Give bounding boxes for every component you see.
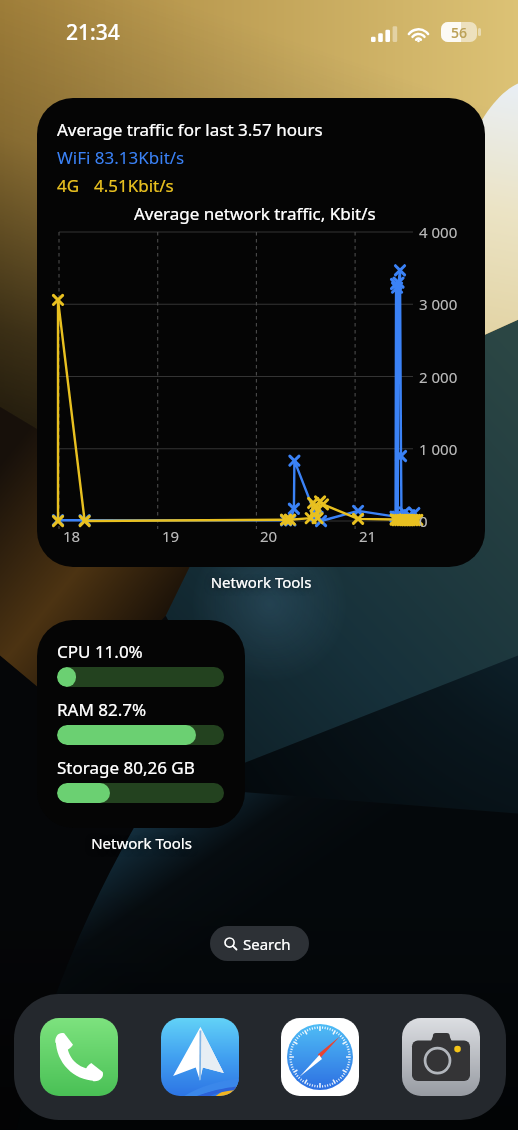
button[interactable]: CPU 11.0% bbox=[37, 620, 245, 828]
staticText: 21:34 bbox=[66, 18, 120, 47]
staticText: 1 000 bbox=[419, 439, 458, 459]
staticText: 2 000 bbox=[419, 367, 458, 387]
staticText: Network Tools bbox=[37, 833, 246, 853]
staticText: 4.51Kbit/s bbox=[94, 174, 174, 197]
staticText: Network Tools bbox=[37, 572, 485, 592]
staticText: 0 bbox=[419, 511, 428, 531]
staticText: Search bbox=[243, 934, 291, 954]
staticText: Storage 80,26 GB bbox=[57, 756, 195, 779]
staticText: 4G bbox=[57, 174, 80, 197]
button[interactable]: Spark Mail bbox=[161, 1018, 239, 1096]
staticText: 18 bbox=[63, 526, 81, 546]
button[interactable]: Search bbox=[210, 926, 309, 961]
staticText: 3 000 bbox=[419, 294, 458, 314]
button[interactable]: Safari bbox=[281, 1018, 359, 1096]
staticText: WiFi 83.13Kbit/s bbox=[57, 146, 185, 169]
staticText: 21 bbox=[359, 526, 377, 546]
button[interactable]: Average traffic for last 3.57 hours bbox=[37, 98, 485, 567]
staticText: 19 bbox=[162, 526, 180, 546]
staticText: 56 bbox=[451, 23, 468, 42]
staticText: 4 000 bbox=[419, 222, 458, 242]
button[interactable]: Phone bbox=[40, 1018, 118, 1096]
staticText: RAM 82.7% bbox=[57, 698, 147, 721]
staticText: Average network traffic, Kbit/s bbox=[134, 202, 376, 225]
button[interactable]: Camera bbox=[402, 1018, 480, 1096]
staticText: CPU 11.0% bbox=[57, 640, 143, 663]
staticText: Average traffic for last 3.57 hours bbox=[57, 118, 323, 141]
staticText: 20 bbox=[260, 526, 278, 546]
